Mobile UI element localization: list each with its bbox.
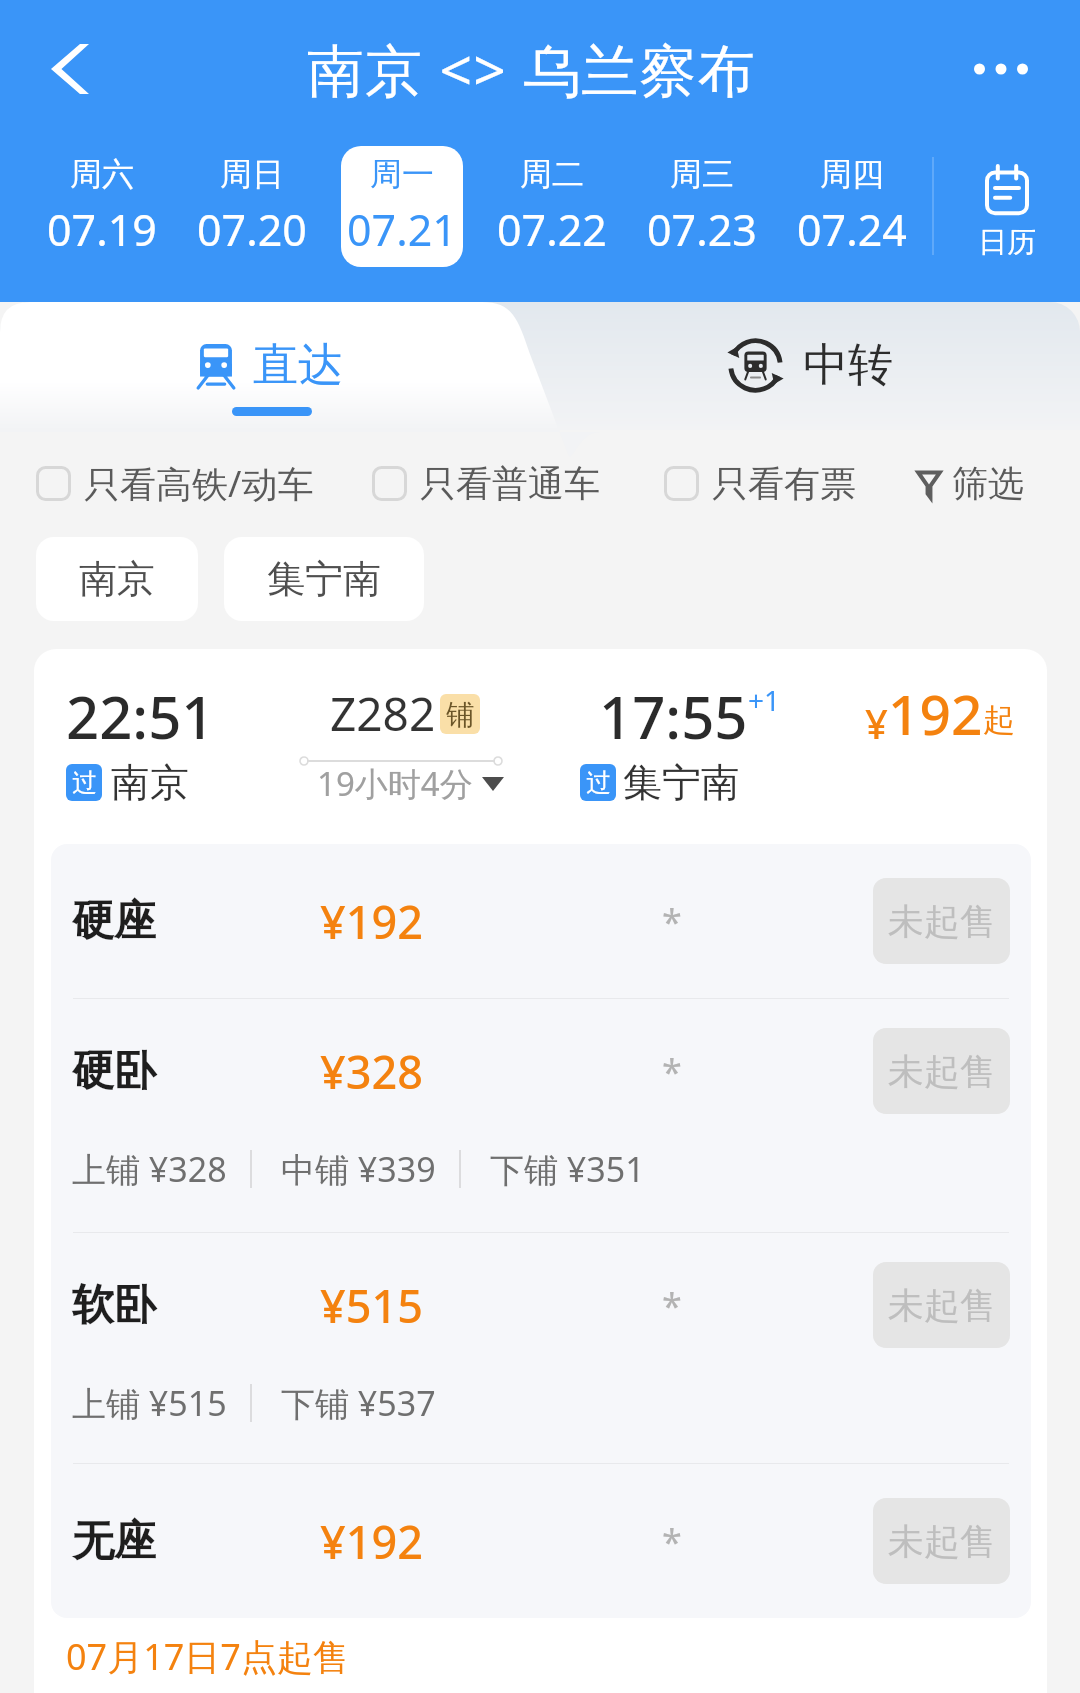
staticText: 07.22 [497, 200, 607, 259]
staticText: 07.19 [47, 200, 157, 259]
staticText: 上铺 ¥515 [72, 1380, 227, 1426]
staticText: * [662, 1517, 682, 1566]
button[interactable]: 22:51 [34, 649, 1047, 844]
staticText: 07月17日7点起售 [66, 1632, 349, 1681]
staticText: 17:55 [599, 677, 748, 756]
staticText: 未起售 [888, 1283, 996, 1328]
staticText: ¥ [865, 696, 888, 750]
staticText: 硬卧 [72, 1045, 320, 1098]
button[interactable]: 未起售 [873, 1028, 1010, 1114]
staticText: 日历 [978, 224, 1036, 261]
button[interactable]: 硬卧 [51, 999, 1031, 1232]
staticText: * [662, 897, 682, 946]
button[interactable]: 无座 [51, 1464, 1031, 1618]
staticText: 软卧 [72, 1279, 320, 1332]
staticText: 未起售 [888, 899, 996, 944]
staticText: 07.20 [197, 200, 307, 259]
staticText: 集宁南 [267, 555, 381, 603]
staticText: 未起售 [888, 1519, 996, 1564]
button[interactable]: 未起售 [873, 878, 1010, 964]
staticText: 下铺 ¥351 [490, 1146, 645, 1192]
staticText: 周三 [670, 154, 734, 194]
staticText: 南京 [111, 758, 189, 807]
button[interactable]: Back [0, 0, 140, 138]
staticText: ¥192 [320, 891, 610, 952]
staticText: ¥192 [320, 1511, 610, 1572]
button[interactable]: 周四 [791, 146, 913, 267]
button[interactable]: 硬座 [51, 844, 1031, 998]
button[interactable]: 周日 [191, 146, 313, 267]
button[interactable]: 软卧 [51, 1233, 1031, 1463]
staticText: 周四 [820, 154, 884, 194]
staticText: 周二 [520, 154, 584, 194]
staticText: 19小时4分 [317, 761, 473, 806]
staticText: 无座 [72, 1515, 320, 1568]
button[interactable]: 未起售 [873, 1498, 1010, 1584]
staticText: 筛选 [952, 461, 1024, 506]
staticText: 上铺 ¥328 [72, 1146, 227, 1192]
staticText: 起 [983, 700, 1015, 740]
staticText: 只看高铁/动车 [84, 459, 314, 508]
staticText: 只看有票 [712, 461, 856, 506]
staticText: 只看普通车 [420, 461, 600, 506]
button[interactable]: 只看有票 [664, 461, 856, 506]
staticText: 07.21 [347, 200, 457, 259]
button[interactable]: 周三 [641, 146, 763, 267]
button[interactable]: 只看高铁/动车 [36, 459, 314, 508]
staticText: 周日 [220, 154, 284, 194]
staticText: 过 [72, 767, 97, 798]
button[interactable]: 中转 [540, 302, 1080, 430]
staticText: 下铺 ¥537 [281, 1380, 436, 1426]
staticText: 07.23 [647, 200, 757, 259]
button[interactable]: 周六 [41, 146, 163, 267]
staticText: 192 [888, 676, 983, 751]
staticText: * [662, 1281, 682, 1330]
button[interactable]: More options [922, 0, 1080, 138]
staticText: 22:51 [66, 677, 215, 756]
staticText: +1 [748, 681, 781, 719]
staticText: * [662, 1047, 682, 1096]
staticText: Z282 [330, 682, 436, 745]
staticText: 直达 [253, 337, 343, 394]
staticText: 集宁南 [623, 758, 740, 807]
button[interactable]: 周二 [491, 146, 613, 267]
staticText: 南京 <> 乌兰察布 [307, 30, 756, 108]
staticText: 07.24 [797, 200, 907, 259]
button[interactable]: 筛选 [917, 461, 1024, 506]
staticText: 硬座 [72, 895, 320, 948]
staticText: 周一 [370, 154, 434, 194]
button[interactable]: 集宁南 [224, 537, 424, 621]
staticText: 过 [586, 767, 611, 798]
staticText: 中铺 ¥339 [281, 1146, 436, 1192]
staticText: 铺 [446, 697, 474, 732]
staticText: 中转 [803, 337, 893, 394]
staticText: 南京 [79, 555, 155, 603]
staticText: ¥515 [320, 1275, 610, 1336]
button[interactable]: 未起售 [873, 1262, 1010, 1348]
staticText: ¥328 [320, 1041, 610, 1102]
button[interactable]: 日历 [934, 124, 1080, 288]
staticText: 周六 [70, 154, 134, 194]
button[interactable]: 南京 [36, 537, 198, 621]
staticText: 未起售 [888, 1049, 996, 1094]
button[interactable]: 只看普通车 [372, 461, 600, 506]
button[interactable]: 直达 [0, 302, 540, 430]
button[interactable]: 周一 [341, 146, 463, 267]
